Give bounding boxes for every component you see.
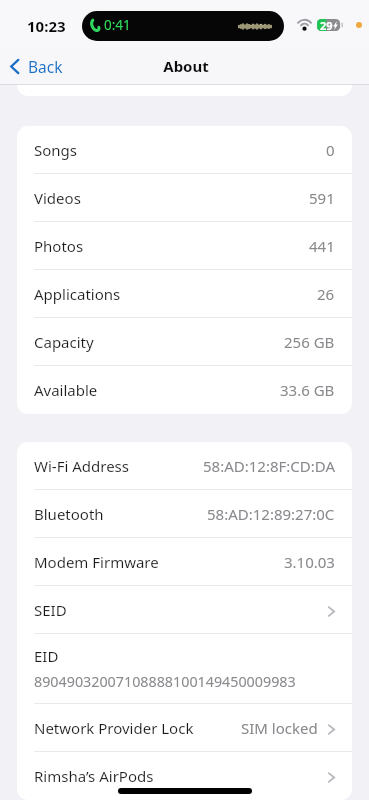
staticText: 10:23 <box>27 16 66 36</box>
button[interactable]: EID <box>17 634 352 704</box>
staticText: 26 <box>317 284 335 304</box>
staticText: Network Provider Lock <box>34 718 194 738</box>
staticText: 256 GB <box>284 332 335 352</box>
staticText: Videos <box>34 188 81 208</box>
staticText: EID <box>34 646 59 666</box>
button[interactable]: Rimsha’s AirPods <box>17 752 352 800</box>
button[interactable]: Applications <box>17 270 352 318</box>
staticText: 441 <box>309 236 335 256</box>
button[interactable]: Active call 0:41 <box>82 11 284 41</box>
other: Wi-Fi <box>296 18 313 30</box>
staticText: 591 <box>309 188 335 208</box>
staticText: 89049032007108888100149450009983 <box>34 672 296 691</box>
staticText: 58:AD:12:8F:CD:DA <box>203 456 335 476</box>
staticText: Available <box>34 380 98 400</box>
staticText: Bluetooth <box>34 504 104 524</box>
button[interactable]: Back <box>0 49 73 84</box>
other: Battery 29 percent charging <box>317 19 344 31</box>
staticText: Photos <box>34 236 84 256</box>
staticText: Capacity <box>34 332 94 352</box>
staticText: 0 <box>326 140 335 160</box>
button[interactable]: Videos <box>17 174 352 222</box>
staticText: Rimsha’s AirPods <box>34 766 154 786</box>
button[interactable]: Modem Firmware <box>17 538 352 586</box>
button[interactable]: Available <box>17 366 352 414</box>
staticText: SIM locked <box>241 718 318 738</box>
staticText: Back <box>28 56 63 77</box>
button[interactable]: Songs <box>17 126 352 174</box>
staticText: 3.10.03 <box>284 552 335 572</box>
staticText: 33.6 GB <box>280 380 335 400</box>
staticText: Modem Firmware <box>34 552 159 572</box>
staticText: 29 <box>320 18 333 30</box>
staticText: SEID <box>34 600 67 620</box>
staticText: Songs <box>34 140 77 160</box>
staticText: Wi-Fi Address <box>34 456 129 476</box>
staticText: About <box>163 56 209 76</box>
button[interactable]: Photos <box>17 222 352 270</box>
button[interactable]: Capacity <box>17 318 352 366</box>
button[interactable]: Network Provider Lock <box>17 704 352 752</box>
staticText: 58:AD:12:89:27:0C <box>207 504 335 524</box>
staticText: Applications <box>34 284 121 304</box>
button[interactable]: SEID <box>17 586 352 634</box>
button[interactable]: Wi-Fi Address <box>17 442 352 490</box>
button[interactable]: Bluetooth <box>17 490 352 538</box>
staticText: 0:41 <box>104 16 131 34</box>
